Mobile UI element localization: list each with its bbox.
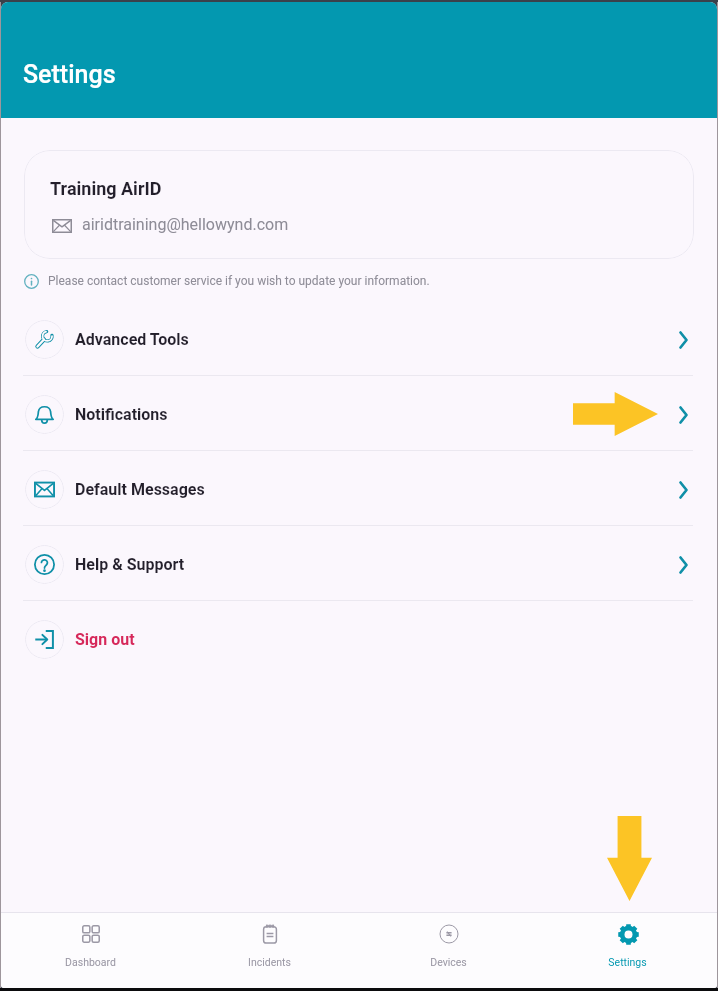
button[interactable]: Help & Support [1,526,717,600]
button[interactable]: Devices [359,912,538,988]
button[interactable]: Settings [538,912,717,988]
staticText: Settings [23,60,116,89]
button[interactable]: Training AirID [24,150,694,259]
button[interactable]: Default Messages [1,451,717,525]
staticText: Dashboard [65,956,116,968]
button[interactable]: Dashboard [1,912,180,988]
staticText: Incidents [248,956,291,968]
staticText: Devices [430,956,467,968]
button[interactable]: Notifications [1,376,717,450]
staticText: airidtraining@hellowynd.com [82,215,289,234]
staticText: Help & Support [75,555,185,574]
staticText: Training AirID [50,178,162,199]
staticText: Default Messages [75,480,205,499]
staticText: Advanced Tools [75,330,189,349]
button[interactable]: Incidents [180,912,359,988]
button[interactable]: Sign out [1,601,717,675]
staticText: Sign out [75,630,135,649]
staticText: Notifications [75,405,168,424]
staticText: Please contact customer service if you w… [48,274,430,288]
staticText: Settings [608,956,647,968]
button[interactable]: Advanced Tools [1,301,717,375]
